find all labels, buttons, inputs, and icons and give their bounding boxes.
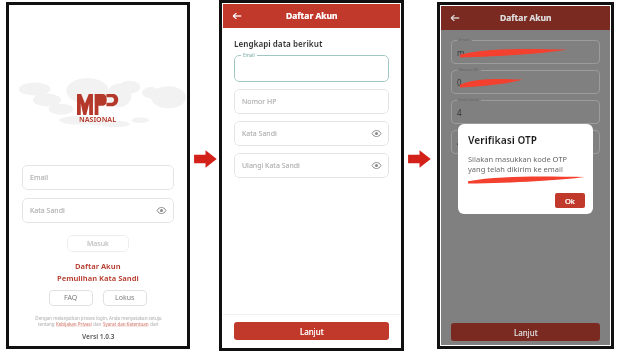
staticText: m xyxy=(457,47,465,58)
staticText: Lokus xyxy=(115,293,135,303)
staticText: Lanjut xyxy=(514,327,538,338)
button[interactable]: Email xyxy=(22,165,174,190)
staticText: Pemulihan Kata Sandi xyxy=(57,273,139,283)
staticText: Versi 1.0.3 xyxy=(82,332,115,341)
staticText: 4 xyxy=(457,137,462,148)
staticText: Daftar Akun xyxy=(500,12,552,24)
button[interactable]: Ulangi Kata Sandi xyxy=(234,153,389,178)
staticText: Nomor HP xyxy=(242,97,277,107)
button[interactable] xyxy=(451,100,600,124)
other: Next step xyxy=(192,146,218,172)
staticText: Email xyxy=(30,173,48,183)
button[interactable]: Pemulihan Kata Sandi xyxy=(57,273,139,283)
button[interactable]: Nomor HP xyxy=(234,89,389,114)
button[interactable]: Kata Sandi xyxy=(22,198,174,223)
staticText: tentang xyxy=(38,321,56,327)
staticText: Kata Sandi xyxy=(459,97,479,102)
button[interactable] xyxy=(451,70,600,94)
staticText: Nomor HP xyxy=(459,67,479,72)
staticText: Kata Sandi xyxy=(242,129,277,139)
staticText: Kata Sandi xyxy=(30,206,65,216)
staticText: Ok xyxy=(565,196,575,206)
button[interactable]: Ok xyxy=(555,193,585,208)
button[interactable] xyxy=(234,55,389,82)
staticText: Email xyxy=(459,37,470,42)
staticText: Daftar Akun xyxy=(286,10,338,22)
button[interactable]: Lokus xyxy=(103,290,147,306)
button[interactable] xyxy=(451,40,600,64)
staticText: Lengkapi data berikut xyxy=(234,38,323,49)
button[interactable]: Kata Sandi xyxy=(234,121,389,146)
staticText: 0 xyxy=(457,77,462,88)
button[interactable]: Kebijakan Privasi xyxy=(56,321,92,327)
button[interactable]: Back xyxy=(449,12,461,24)
button[interactable]: FAQ xyxy=(49,290,93,306)
staticText: 4 xyxy=(457,107,462,118)
other: Show password xyxy=(157,206,166,215)
button[interactable]: Syarat dan Ketentuan xyxy=(103,321,149,327)
staticText: NASIONAL xyxy=(79,115,117,125)
button[interactable]: Lanjut xyxy=(451,323,600,341)
button[interactable]: Masuk xyxy=(67,235,129,252)
staticText: Ulangi Kata Sandi xyxy=(242,161,300,171)
staticText: yang telah dikirim ke email xyxy=(468,164,563,174)
staticText: Email xyxy=(243,52,255,58)
staticText: dan xyxy=(92,321,103,327)
button[interactable]: Daftar Akun xyxy=(75,261,121,271)
other: Show password xyxy=(372,161,381,170)
button[interactable]: Back xyxy=(231,10,243,22)
staticText: Verifikasi OTP xyxy=(468,133,537,147)
staticText: Dengan melanjutkan proses login, Anda me… xyxy=(35,315,162,321)
button[interactable] xyxy=(451,130,600,154)
staticText: Masuk xyxy=(87,239,109,249)
staticText: dari xyxy=(149,321,159,327)
staticText: Lanjut xyxy=(300,326,324,337)
staticText: FAQ xyxy=(64,293,78,303)
staticText: Daftar Akun xyxy=(75,261,121,271)
staticText: Silakan masukkan kode OTP xyxy=(468,154,567,164)
button[interactable]: Lanjut xyxy=(234,322,389,340)
other: Next step xyxy=(406,146,432,172)
other: Show password xyxy=(372,129,381,138)
